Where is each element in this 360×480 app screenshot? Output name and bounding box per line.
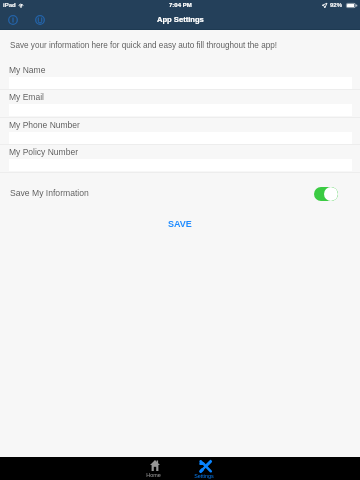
staticText: 92% [330,2,343,9]
staticText: Save My Information [10,188,89,198]
button[interactable]: Settings [180,457,228,480]
staticText: My Policy Number [9,147,78,156]
staticText: iPad [3,2,16,9]
staticText: My Name [9,65,46,74]
staticText: My Email [9,92,44,101]
staticText: Settings [194,473,214,479]
staticText: Save your information here for quick and… [10,41,277,50]
button[interactable]: SAVE [160,215,200,233]
button[interactable]: Info [3,10,23,30]
button[interactable]: Help [30,10,50,30]
button[interactable]: Home [129,457,177,480]
button[interactable]: Save My Information toggle [314,187,338,201]
staticText: My Phone Number [9,120,80,129]
staticText: SAVE [168,219,192,229]
staticText: App Settings [157,15,204,23]
staticText: Home [146,472,161,478]
staticText: 7:04 PM [169,2,192,9]
